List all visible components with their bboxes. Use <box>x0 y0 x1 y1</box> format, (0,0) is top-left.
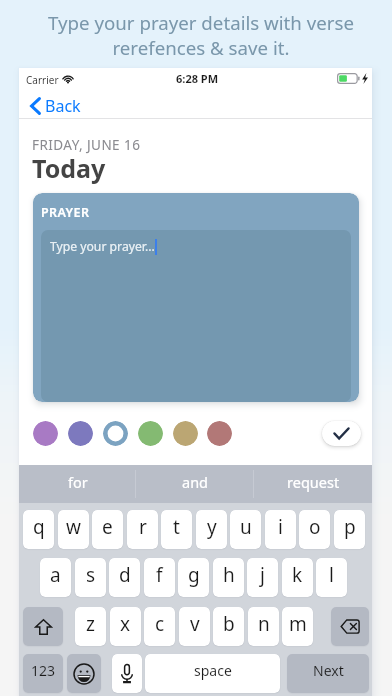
button[interactable]: j <box>247 558 278 597</box>
staticText: k <box>292 562 303 588</box>
staticText: 6:28 PM <box>176 71 219 86</box>
button[interactable]: Next <box>287 654 369 693</box>
staticText: w <box>66 514 81 540</box>
button[interactable]: c <box>144 607 175 646</box>
staticText: and <box>182 472 209 492</box>
button[interactable]: v <box>179 607 210 646</box>
staticText: y <box>207 514 217 540</box>
staticText: request <box>287 472 340 492</box>
button[interactable]: e <box>92 510 123 549</box>
staticText: f <box>156 562 163 588</box>
staticText: i <box>278 514 283 540</box>
button[interactable]: Colour 2 <box>68 421 93 446</box>
button[interactable]: d <box>109 558 140 597</box>
staticText: t <box>173 514 180 540</box>
staticText: p <box>344 514 356 540</box>
other: Shift <box>35 619 52 635</box>
button[interactable]: space <box>145 654 280 693</box>
button[interactable]: and <box>136 465 254 503</box>
staticText: o <box>309 514 321 540</box>
staticText: FRIDAY, JUNE 16 <box>32 136 141 154</box>
staticText: Type your prayer... <box>50 238 155 255</box>
button[interactable]: q <box>23 510 54 549</box>
staticText: u <box>240 514 252 540</box>
button[interactable]: r <box>127 510 158 549</box>
staticText: Carrier <box>26 73 59 87</box>
button[interactable]: for <box>19 465 136 503</box>
button[interactable]: h <box>213 558 244 597</box>
button[interactable]: l <box>316 558 347 597</box>
staticText: v <box>190 611 200 637</box>
button[interactable]: a <box>40 558 71 597</box>
staticText: x <box>120 611 131 637</box>
button[interactable]: t <box>161 510 192 549</box>
button[interactable]: k <box>282 558 313 597</box>
button[interactable]: p <box>334 510 365 549</box>
staticText: s <box>86 562 96 588</box>
button[interactable]: b <box>213 607 244 646</box>
button[interactable]: x <box>110 607 141 646</box>
staticText: l <box>329 562 334 588</box>
staticText: j <box>260 562 265 588</box>
button[interactable]: m <box>282 607 313 646</box>
staticText: 123 <box>31 661 56 680</box>
button[interactable]: Colour 3 <box>103 421 128 446</box>
button[interactable]: f <box>144 558 175 597</box>
button[interactable]: u <box>230 510 261 549</box>
button[interactable]: Shift <box>23 607 63 646</box>
button[interactable] <box>67 654 101 693</box>
button[interactable]: Delete <box>331 607 369 646</box>
staticText: Today <box>32 151 106 185</box>
staticText: q <box>33 514 45 540</box>
button[interactable]: 123 <box>23 654 63 693</box>
button[interactable]: s <box>75 558 106 597</box>
staticText: r <box>139 514 147 540</box>
staticText: c <box>155 611 165 637</box>
staticText: Type your prayer details with verse <box>48 10 354 35</box>
staticText: space <box>194 661 232 680</box>
button[interactable]: Colour 4 <box>138 421 163 446</box>
staticText: e <box>102 514 113 540</box>
staticText: h <box>223 562 235 588</box>
button[interactable]: n <box>248 607 279 646</box>
button[interactable]: y <box>196 510 227 549</box>
button[interactable]: i <box>265 510 296 549</box>
staticText: n <box>258 611 270 637</box>
staticText: g <box>188 562 200 588</box>
button[interactable]: o <box>299 510 330 549</box>
staticText: m <box>289 611 307 637</box>
button[interactable]: request <box>254 465 372 503</box>
button[interactable]: z <box>75 607 106 646</box>
button[interactable] <box>112 654 142 693</box>
staticText: for <box>68 472 88 492</box>
staticText: z <box>86 611 95 637</box>
staticText: Back <box>45 95 81 117</box>
staticText: a <box>50 562 61 588</box>
button[interactable]: PRAYER <box>33 193 359 402</box>
staticText: rerefences & save it. <box>112 35 290 60</box>
button[interactable]: Colour 6 <box>207 421 232 446</box>
button[interactable]: g <box>178 558 209 597</box>
button[interactable]: Back <box>24 92 87 120</box>
staticText: d <box>119 562 131 588</box>
other: Delete <box>340 619 360 634</box>
button[interactable]: w <box>58 510 89 549</box>
button[interactable]: Colour 1 <box>33 421 58 446</box>
staticText: Next <box>313 661 344 680</box>
staticText: b <box>223 611 235 637</box>
staticText: PRAYER <box>41 204 90 221</box>
button[interactable]: Colour 5 <box>173 421 198 446</box>
button[interactable]: Save prayer <box>322 421 361 446</box>
